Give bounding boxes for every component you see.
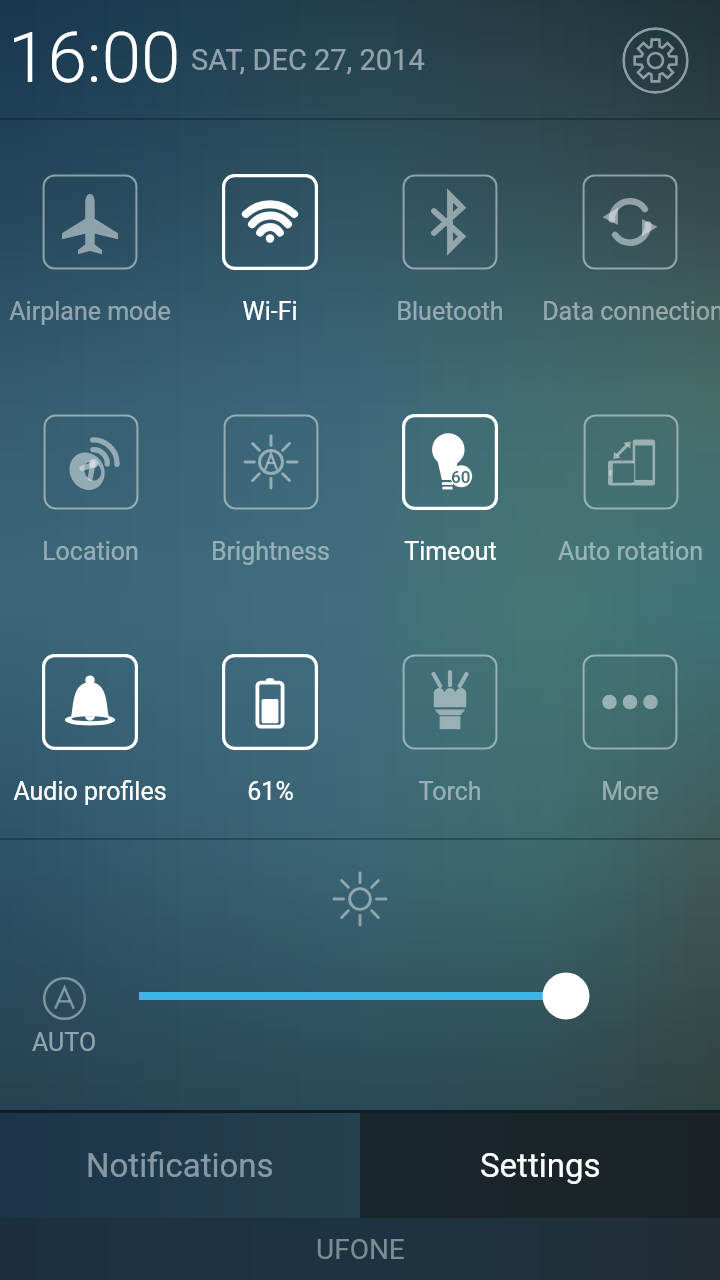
staticText: 61% — [247, 777, 294, 806]
button[interactable]: AUTO — [28, 977, 100, 1057]
staticText: Auto rotation — [558, 537, 703, 566]
button[interactable]: Audio profiles — [11, 654, 169, 806]
staticText: Brightness — [211, 537, 330, 566]
button[interactable]: Airplane mode — [7, 174, 173, 326]
staticText: UFONE — [316, 1233, 405, 1266]
staticText: Wi-Fi — [242, 297, 298, 326]
button[interactable]: Brightness — [209, 414, 332, 566]
staticText: 60 — [451, 467, 471, 487]
button[interactable]: Data connection — [540, 174, 720, 326]
staticText: Notifications — [86, 1146, 274, 1185]
staticText: Settings — [480, 1146, 601, 1185]
staticText: 16:00 — [8, 16, 181, 99]
staticText: AUTO — [32, 1028, 97, 1057]
button[interactable]: Bluetooth — [394, 174, 506, 326]
button[interactable]: Notifications — [0, 1113, 360, 1218]
staticText: Torch — [418, 777, 482, 806]
staticText: Bluetooth — [396, 297, 504, 326]
button[interactable]: More — [580, 654, 680, 806]
staticText: Location — [42, 537, 139, 566]
button[interactable]: Settings — [360, 1113, 720, 1218]
button[interactable]: Location — [40, 414, 141, 566]
button[interactable]: Wi-Fi — [220, 174, 320, 326]
staticText: Airplane mode — [9, 297, 171, 326]
button[interactable]: Settings — [622, 27, 689, 94]
staticText: Timeout — [404, 537, 497, 566]
staticText: SAT, DEC 27, 2014 — [191, 43, 425, 77]
staticText: More — [601, 777, 659, 806]
button[interactable]: Auto rotation — [556, 414, 705, 566]
button[interactable]: 61% — [220, 654, 320, 806]
button[interactable]: Torch — [400, 654, 500, 806]
button[interactable]: 60 — [400, 414, 500, 566]
staticText: Audio profiles — [13, 777, 167, 806]
staticText: Data connection — [542, 297, 718, 326]
